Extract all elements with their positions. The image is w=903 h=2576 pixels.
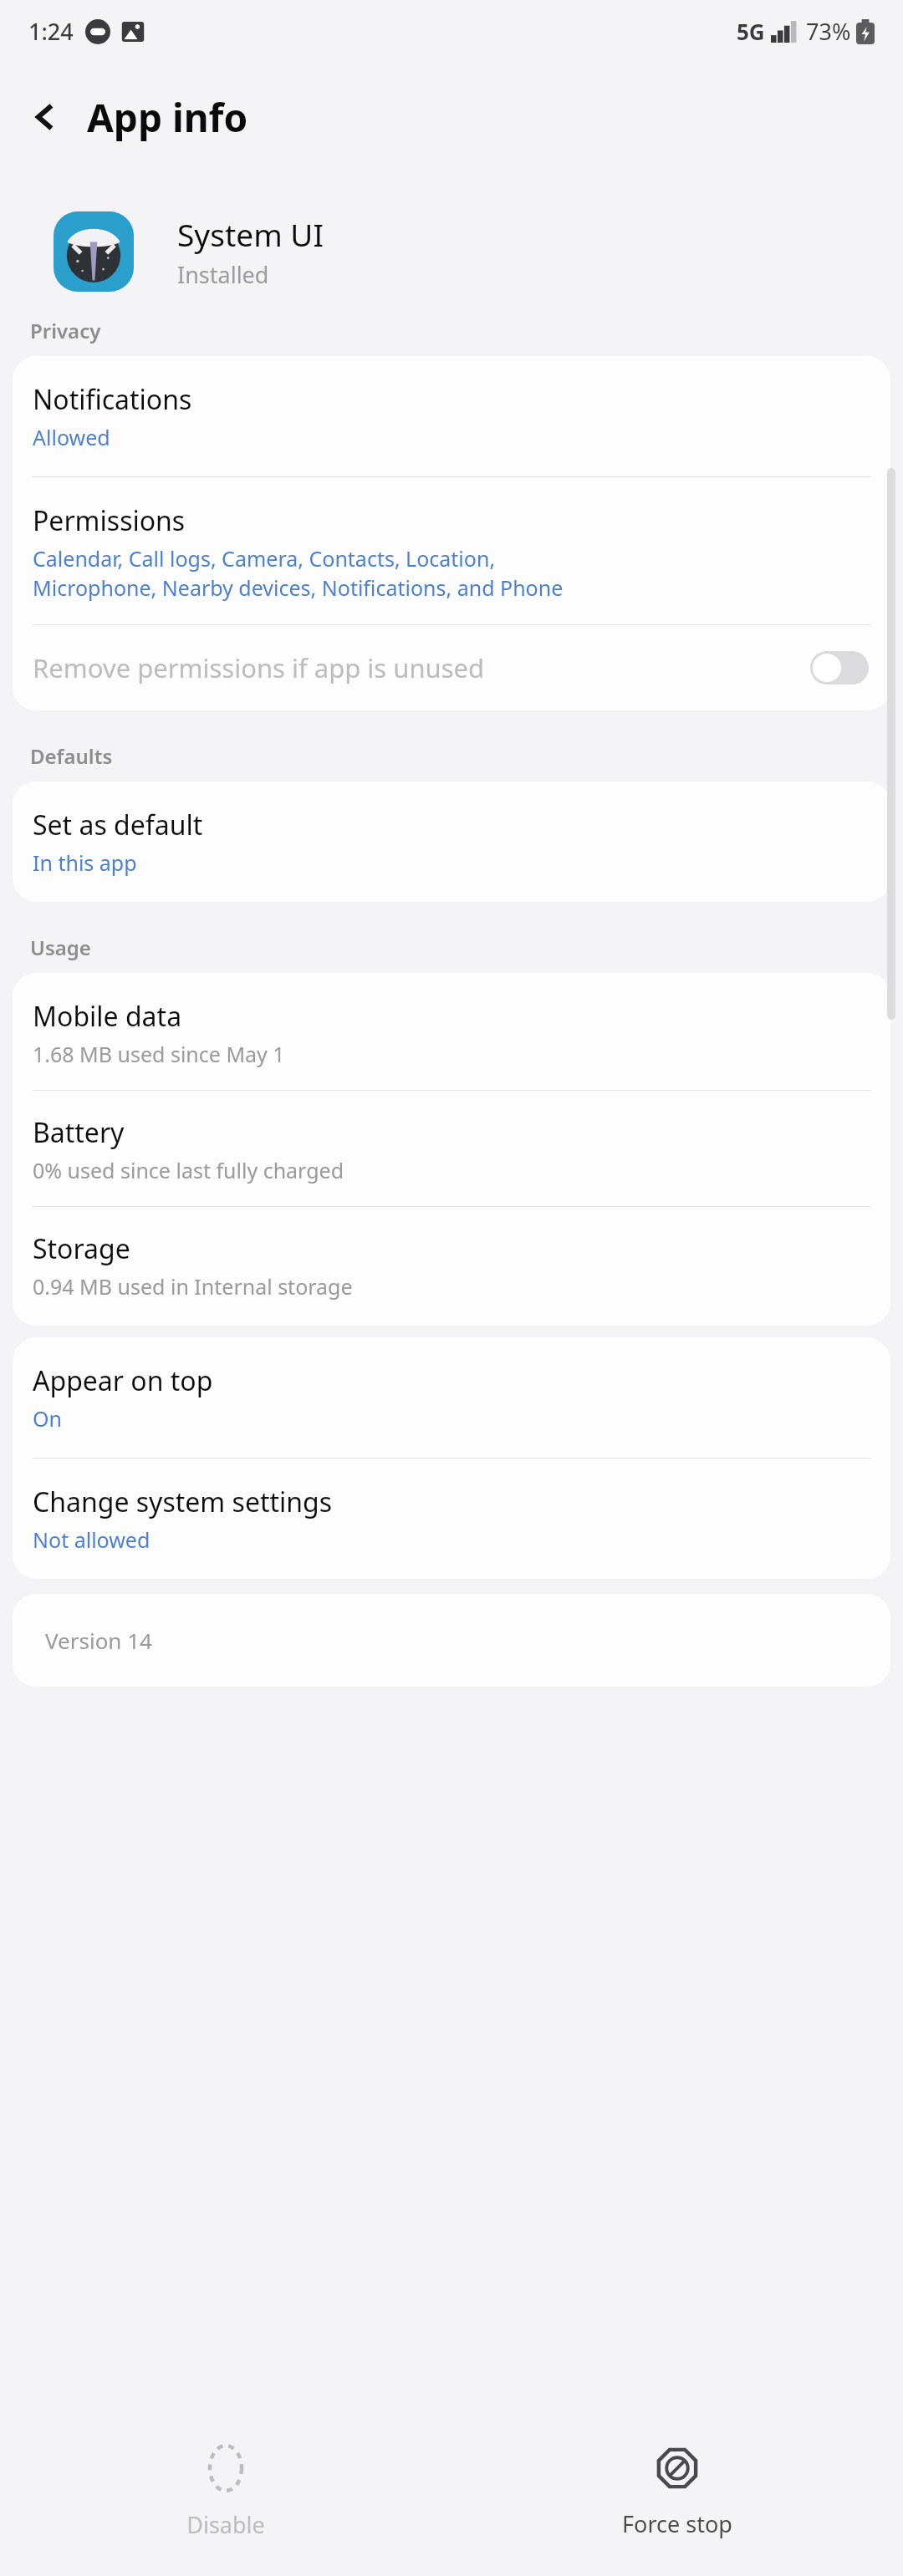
staticText: Not allowed	[33, 1525, 150, 1554]
button[interactable]: Appear on top	[13, 1337, 890, 1458]
staticText: On	[33, 1404, 62, 1433]
staticText: In this app	[33, 848, 137, 877]
staticText: Defaults	[30, 742, 113, 770]
staticText: Force stop	[622, 2508, 732, 2539]
button[interactable]: Change system settings	[13, 1459, 890, 1579]
button[interactable]: Permissions	[13, 477, 890, 624]
button[interactable]: Storage	[13, 1207, 890, 1326]
button[interactable]: Battery	[13, 1091, 890, 1206]
staticText: Installed	[177, 259, 269, 290]
staticText: App info	[87, 91, 248, 144]
staticText: Set as default	[33, 807, 203, 843]
staticText: Storage	[33, 1230, 130, 1267]
staticText: Appear on top	[33, 1362, 213, 1399]
button[interactable]: Mobile data	[13, 973, 890, 1090]
staticText: 5G	[737, 17, 765, 46]
staticText: Version 14	[45, 1626, 152, 1655]
staticText: 1.68 MB used since May 1	[33, 1040, 285, 1068]
button[interactable]: Back	[15, 87, 75, 147]
button[interactable]: Disable	[0, 2409, 451, 2576]
staticText: System UI	[177, 213, 324, 255]
button[interactable]: Force stop	[451, 2409, 903, 2576]
button[interactable]: Notifications	[13, 356, 890, 476]
staticText: Disable	[186, 2509, 265, 2540]
button[interactable]: Remove permissions if app is unused	[13, 625, 890, 710]
staticText: 0% used since last fully charged	[33, 1156, 344, 1184]
button[interactable]: Set as default	[13, 781, 890, 902]
staticText: Remove permissions if app is unused	[33, 650, 810, 685]
staticText: Permissions	[33, 502, 186, 539]
staticText: Mobile data	[33, 998, 182, 1035]
staticText: Privacy	[30, 317, 101, 344]
staticText: 1:24	[28, 16, 74, 47]
staticText: 73%	[806, 16, 851, 47]
staticText: Battery	[33, 1114, 125, 1151]
staticText: Change system settings	[33, 1484, 333, 1520]
staticText: Calendar, Call logs, Camera, Contacts, L…	[33, 544, 564, 603]
staticText: Allowed	[33, 423, 110, 451]
staticText: 0.94 MB used in Internal storage	[33, 1272, 353, 1301]
staticText: Usage	[30, 934, 91, 961]
staticText: Notifications	[33, 381, 192, 418]
